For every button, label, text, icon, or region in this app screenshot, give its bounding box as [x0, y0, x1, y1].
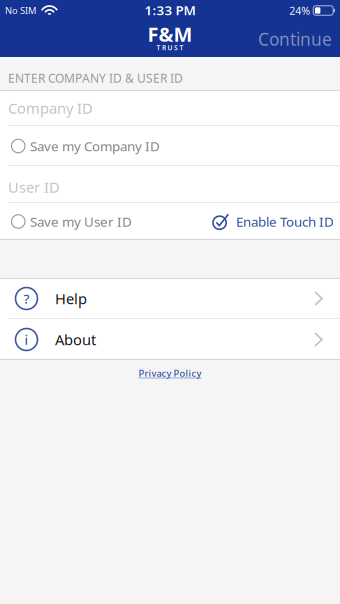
staticText: No SIM: [5, 4, 36, 17]
staticText: ENTER COMPANY ID & USER ID: [8, 70, 183, 86]
staticText: TRUST: [156, 43, 183, 52]
button[interactable]: ?: [0, 278, 340, 319]
button[interactable]: User ID: [0, 166, 340, 203]
staticText: i: [24, 331, 28, 348]
staticText: Save my User ID: [30, 213, 132, 230]
staticText: User ID: [8, 177, 60, 197]
button[interactable]: Save my User ID: [0, 213, 132, 230]
staticText: Company ID: [8, 98, 93, 118]
button[interactable]: Save my Company ID: [0, 137, 160, 155]
staticText: Enable Touch ID: [236, 213, 334, 230]
staticText: 1:33 PM: [144, 1, 195, 19]
staticText: ?: [23, 290, 29, 307]
staticText: Privacy Policy: [138, 367, 201, 379]
staticText: F&M: [147, 21, 192, 47]
staticText: Help: [55, 289, 87, 308]
staticText: Save my Company ID: [30, 137, 160, 155]
button[interactable]: Privacy Policy: [138, 360, 201, 379]
button[interactable]: Continue: [258, 27, 340, 50]
button[interactable]: Company ID: [0, 90, 340, 126]
button[interactable]: Enable Touch ID: [213, 213, 340, 230]
staticText: About: [55, 330, 96, 349]
staticText: 24%: [289, 3, 310, 18]
button[interactable]: i: [0, 319, 340, 360]
staticText: Continue: [258, 27, 332, 50]
